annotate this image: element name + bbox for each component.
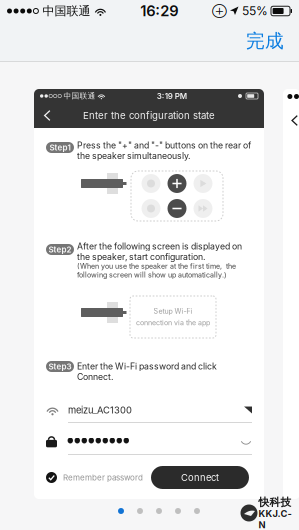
staticText: Connect (181, 472, 219, 483)
staticText: Press the "+" and "-" buttons on the rea… (77, 140, 251, 161)
staticText: 55% (242, 4, 268, 18)
staticText: 16:29 (140, 2, 178, 20)
staticText: ⊕ (212, 4, 227, 17)
staticText: Step1 (49, 143, 70, 152)
staticText: (When you use the speaker at the first t… (77, 262, 236, 279)
staticText: Enter the Wi-Fi password and click Conne… (77, 361, 217, 382)
staticText: Step2 (48, 245, 71, 254)
staticText: 3:19 PM (157, 91, 187, 101)
staticText: Remember password (63, 473, 143, 482)
staticText: connection via the app (136, 318, 210, 327)
staticText: ●●●●●●●●● (67, 437, 130, 445)
staticText: Enter the configuration state (83, 110, 215, 121)
button[interactable]: Remember password (46, 466, 143, 489)
staticText: 完成 (246, 29, 284, 53)
staticText: After the following screen is displayed … (77, 241, 242, 262)
staticText: Setup Wi-Fi (153, 307, 192, 315)
staticText: 中国联通 (61, 91, 97, 101)
button[interactable]: 完成 (237, 22, 293, 60)
staticText: KKJ.CN (258, 508, 291, 530)
staticText: 快科技 (258, 495, 291, 509)
staticText: meizu_AC1300 (68, 404, 132, 416)
staticText: 中国联通 (38, 3, 94, 18)
staticText: Step3 (48, 362, 71, 371)
button[interactable]: Connect (151, 466, 249, 489)
